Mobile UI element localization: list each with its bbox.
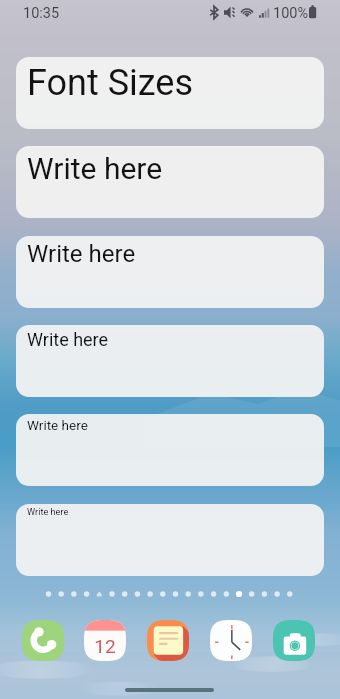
button[interactable]: Write here bbox=[16, 236, 324, 308]
button[interactable]: Camera bbox=[273, 620, 315, 661]
button[interactable]: Font Sizes bbox=[16, 57, 324, 129]
staticText: Write here bbox=[27, 151, 163, 186]
button[interactable]: Calendar bbox=[84, 620, 126, 661]
button[interactable]: Notes bbox=[147, 620, 189, 661]
button[interactable]: Write here bbox=[16, 146, 324, 218]
staticText: Write here bbox=[27, 417, 88, 433]
staticText: 10:35 bbox=[23, 5, 60, 22]
staticText: Write here bbox=[27, 506, 69, 517]
staticText: 100% bbox=[273, 5, 309, 22]
button[interactable]: Write here bbox=[16, 414, 324, 486]
button[interactable]: Phone bbox=[22, 620, 64, 661]
staticText: Font Sizes bbox=[27, 62, 194, 104]
button[interactable]: Clock bbox=[210, 620, 252, 661]
staticText: 12 bbox=[84, 635, 126, 661]
button[interactable]: Write here bbox=[16, 504, 324, 576]
staticText: Write here bbox=[27, 240, 136, 268]
button[interactable]: Write here bbox=[16, 325, 324, 397]
staticText: Write here bbox=[27, 329, 109, 350]
